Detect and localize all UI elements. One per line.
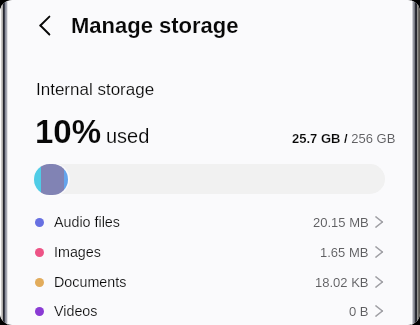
staticText: Internal storage xyxy=(36,80,155,99)
button[interactable]: Videos xyxy=(0,296,420,325)
staticText: Images xyxy=(54,244,101,260)
button[interactable]: Images xyxy=(0,237,420,267)
staticText: Manage storage xyxy=(71,13,239,38)
staticText: used xyxy=(106,125,150,147)
button[interactable]: Audio files xyxy=(0,207,420,237)
staticText: 1.65 MB xyxy=(320,245,369,260)
staticText: 25.7 GB / 256 GB xyxy=(292,131,396,146)
staticText: 0 B xyxy=(349,304,369,319)
staticText: 20.15 MB xyxy=(313,215,369,230)
staticText: Audio files xyxy=(54,214,120,230)
staticText: 10% xyxy=(35,113,102,150)
staticText: 18.02 KB xyxy=(315,275,369,290)
button[interactable]: Documents xyxy=(0,267,420,297)
staticText: Documents xyxy=(54,274,127,290)
staticText: Videos xyxy=(54,303,98,319)
button[interactable]: Back xyxy=(30,5,70,45)
